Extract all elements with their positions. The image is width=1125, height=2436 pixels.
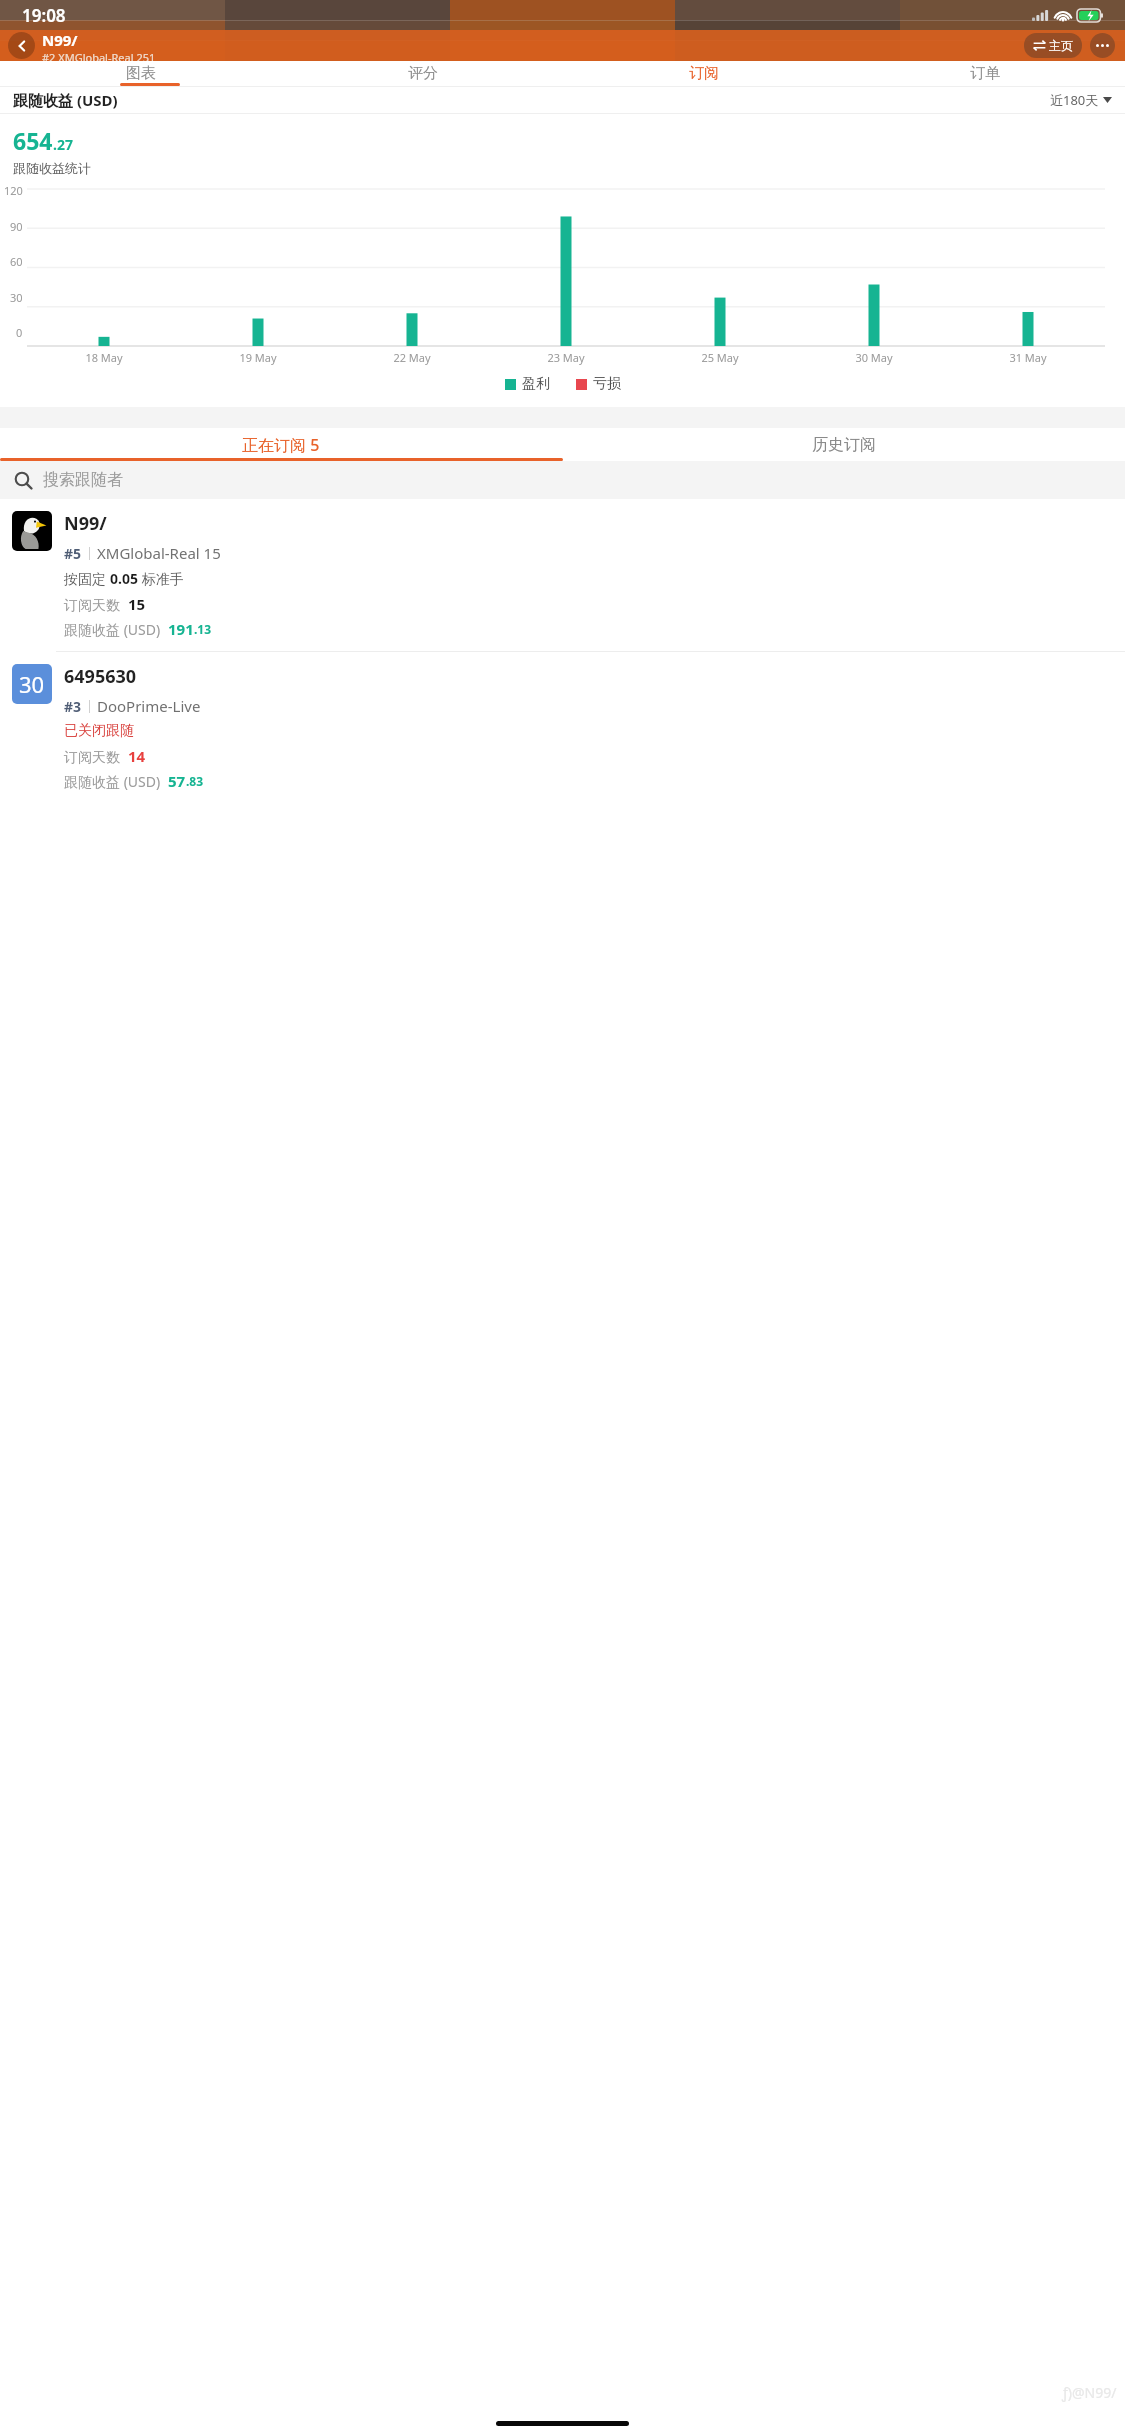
staticText: 19:08 <box>22 4 66 27</box>
staticText: 30 <box>19 669 45 699</box>
staticText: 30 May <box>855 350 893 365</box>
staticText: 近180天 <box>1050 91 1099 109</box>
staticText: 图表 <box>126 64 156 83</box>
staticText: 15 <box>128 594 146 614</box>
staticText: 盈利 <box>522 375 550 393</box>
staticText: XMGlobal-Real 15 <box>97 543 221 563</box>
staticText: 标准手 <box>138 569 184 588</box>
staticText: 57 <box>168 771 186 791</box>
staticText: 搜索跟随者 <box>43 470 123 490</box>
staticText: 评分 <box>408 64 438 83</box>
staticText: 23 May <box>547 350 585 365</box>
staticText: 30 <box>10 290 23 305</box>
button[interactable]: 订阅 <box>563 61 844 86</box>
staticText: 已关闭跟随 <box>64 722 134 740</box>
staticText: 25 May <box>701 350 739 365</box>
staticText: 跟随收益 (USD) <box>64 772 168 791</box>
button[interactable]: 主页 <box>1024 33 1082 58</box>
staticText: 654 <box>13 125 53 156</box>
staticText: 120 <box>4 183 23 198</box>
staticText: 60 <box>10 254 23 269</box>
staticText: 历史订阅 <box>812 435 876 455</box>
button[interactable]: Back <box>8 32 35 59</box>
staticText: ƒ)@N99/ <box>1062 2383 1117 2402</box>
staticText: 订阅天数 <box>64 747 128 766</box>
button[interactable]: 正在订阅 5 <box>0 428 562 461</box>
staticText: 19 May <box>239 350 277 365</box>
staticText: 按固定 <box>64 569 110 588</box>
staticText: 0.05 <box>110 569 138 588</box>
button[interactable]: More options <box>1090 33 1115 58</box>
staticText: N99/ <box>64 511 107 536</box>
staticText: DooPrime-Live <box>97 696 201 716</box>
staticText: 跟随收益 (USD) <box>64 620 168 639</box>
button[interactable]: 图表 <box>0 61 282 86</box>
staticText: #5 <box>64 544 82 563</box>
button[interactable]: 评分 <box>282 61 563 86</box>
staticText: 14 <box>128 746 146 766</box>
staticText: 订单 <box>970 64 1000 83</box>
staticText: 18 May <box>85 350 123 365</box>
button[interactable]: 近180天 <box>1050 91 1112 109</box>
staticText: 191 <box>168 619 194 639</box>
staticText: 主页 <box>1049 38 1073 53</box>
staticText: 22 May <box>393 350 431 365</box>
staticText: 跟随收益 (USD) <box>13 90 118 110</box>
staticText: N99/ <box>42 30 78 50</box>
staticText: 订阅天数 <box>64 595 128 614</box>
button[interactable]: 订单 <box>844 61 1125 86</box>
staticText: #3 <box>64 697 82 716</box>
staticText: 跟随收益统计 <box>13 160 91 176</box>
staticText: #2 XMGlobal-Real 251 <box>42 50 156 61</box>
staticText: 正在订阅 5 <box>242 434 320 456</box>
button[interactable]: N99/ <box>0 499 1125 651</box>
staticText: .13 <box>194 621 212 637</box>
button[interactable]: 历史订阅 <box>562 428 1125 461</box>
staticText: .27 <box>53 135 73 154</box>
button[interactable]: 30 <box>0 652 1125 791</box>
staticText: 亏损 <box>593 375 621 393</box>
staticText: 0 <box>16 325 23 340</box>
staticText: .83 <box>186 773 204 789</box>
staticText: 90 <box>10 219 23 234</box>
button[interactable]: 搜索跟随者 <box>0 461 1125 499</box>
staticText: 31 May <box>1009 350 1047 365</box>
staticText: 6495630 <box>64 664 137 689</box>
staticText: 订阅 <box>689 64 719 83</box>
